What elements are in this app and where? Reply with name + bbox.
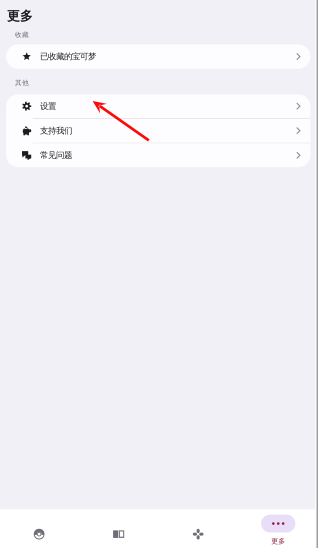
button[interactable]: 常见问题 (6, 143, 310, 167)
button[interactable]: 设置 (6, 94, 310, 118)
button[interactable]: 支持我们 (6, 119, 310, 143)
staticText: 收藏 (15, 30, 29, 39)
staticText: 设置 (40, 101, 56, 111)
button[interactable]: 更多 (238, 509, 318, 548)
staticText: 已收藏的宝可梦 (40, 51, 96, 62)
button[interactable]: 宝可梦 (0, 509, 79, 548)
button[interactable]: 已收藏的宝可梦 (6, 44, 310, 69)
staticText: 支持我们 (40, 125, 72, 136)
staticText: 其他 (15, 78, 29, 87)
button[interactable]: 招式 (159, 509, 238, 548)
staticText: 更多 (271, 537, 285, 545)
staticText: 常见问题 (40, 150, 72, 161)
staticText: 更多 (7, 8, 33, 24)
button[interactable]: 图鉴 (79, 509, 159, 548)
